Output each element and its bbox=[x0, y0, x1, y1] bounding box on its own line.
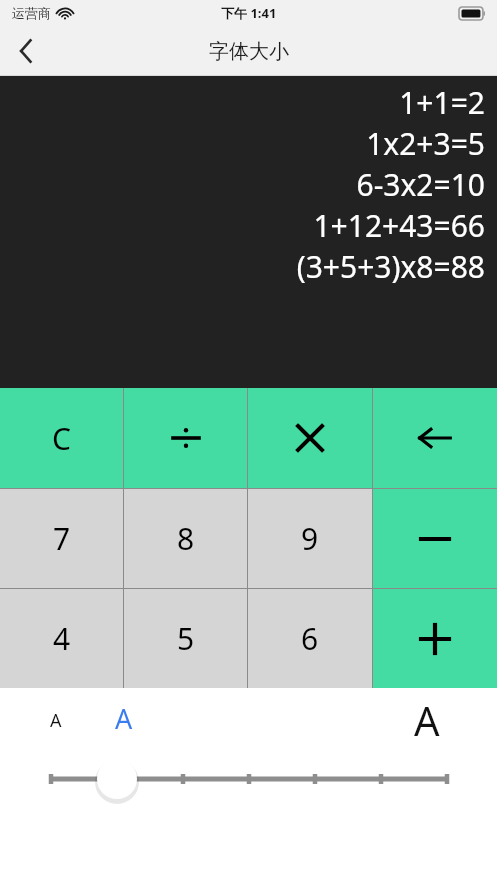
button[interactable]: Font size slider bbox=[0, 756, 497, 802]
staticText: 运营商 bbox=[12, 5, 51, 21]
staticText: A bbox=[414, 693, 440, 747]
button[interactable]: C bbox=[0, 388, 123, 488]
staticText: 1+12+43=66 bbox=[313, 205, 485, 246]
button[interactable]: Plus bbox=[373, 589, 497, 688]
button[interactable]: Divide bbox=[124, 388, 247, 488]
button[interactable]: 8 bbox=[124, 489, 247, 588]
staticText: (3+5+3)x8=88 bbox=[296, 246, 485, 287]
button[interactable]: Minus bbox=[373, 489, 497, 588]
staticText: C bbox=[52, 418, 71, 459]
button[interactable]: 6 bbox=[248, 589, 372, 688]
button[interactable]: 4 bbox=[0, 589, 123, 688]
button[interactable]: Back bbox=[0, 26, 52, 76]
staticText: 5 bbox=[177, 618, 195, 659]
button[interactable]: Backspace bbox=[373, 388, 497, 488]
staticText: 6-3x2=10 bbox=[356, 164, 485, 205]
staticText: 4 bbox=[53, 618, 71, 659]
button[interactable]: Multiply bbox=[248, 388, 372, 488]
button[interactable]: 7 bbox=[0, 489, 123, 588]
staticText: 1+1=2 bbox=[399, 82, 485, 123]
button[interactable]: 5 bbox=[124, 589, 247, 688]
staticText: A bbox=[115, 700, 133, 737]
staticText: 1x2+3=5 bbox=[366, 123, 485, 164]
staticText: 6 bbox=[301, 618, 319, 659]
staticText: A bbox=[50, 708, 62, 733]
staticText: 字体大小 bbox=[209, 39, 289, 64]
staticText: 8 bbox=[177, 518, 195, 559]
staticText: 7 bbox=[53, 518, 71, 559]
staticText: 下午 1:41 bbox=[221, 4, 277, 22]
button[interactable]: 9 bbox=[248, 489, 372, 588]
staticText: 9 bbox=[301, 518, 319, 559]
